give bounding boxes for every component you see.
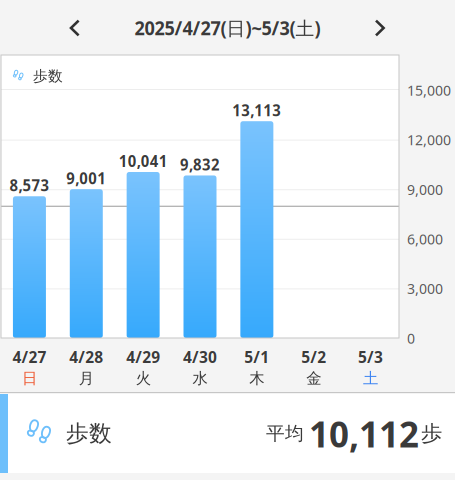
staticText: 平均: [266, 422, 304, 445]
staticText: 4/28: [69, 346, 103, 368]
button[interactable]: 2025/4/27(日)~5/3(土): [107, 13, 347, 43]
staticText: 3,000: [407, 278, 443, 298]
staticText: 4/30: [183, 346, 217, 368]
staticText: 9,001: [66, 168, 106, 189]
staticText: 6,000: [407, 229, 443, 249]
button[interactable]: 歩数: [8, 394, 455, 473]
staticText: 8,573: [9, 175, 49, 196]
staticText: 木: [249, 369, 264, 388]
staticText: 火: [136, 369, 151, 388]
staticText: 2025/4/27(日)~5/3(土): [134, 15, 320, 41]
button[interactable]: Next week: [358, 6, 402, 50]
staticText: 5/3: [358, 346, 383, 368]
staticText: 歩数: [66, 419, 112, 448]
staticText: 歩数: [33, 67, 63, 85]
staticText: 5/1: [244, 346, 269, 368]
staticText: 10,041: [119, 150, 168, 171]
staticText: 9,832: [180, 154, 220, 175]
staticText: 日: [22, 369, 37, 388]
staticText: 12,000: [407, 130, 451, 150]
staticText: 4/29: [126, 346, 160, 368]
staticText: 4/27: [12, 346, 46, 368]
staticText: 10,112: [309, 409, 419, 458]
staticText: 13,113: [232, 100, 281, 121]
staticText: 金: [306, 369, 321, 388]
staticText: 0: [407, 328, 415, 348]
staticText: 土: [363, 369, 378, 388]
staticText: 水: [192, 369, 207, 388]
staticText: 月: [79, 369, 94, 388]
staticText: 5/2: [301, 346, 326, 368]
staticText: 15,000: [407, 80, 451, 100]
staticText: 歩: [421, 420, 442, 447]
staticText: 9,000: [407, 179, 443, 199]
button[interactable]: Previous week: [53, 6, 97, 50]
